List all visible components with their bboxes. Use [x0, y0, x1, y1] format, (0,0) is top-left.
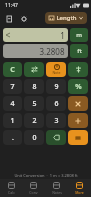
button[interactable]: Measure: [68, 62, 88, 77]
button[interactable]: History: [4, 13, 15, 24]
staticText: 11:47: [5, 2, 18, 9]
staticText: 2: [32, 116, 37, 126]
staticText: ft: [77, 47, 82, 55]
staticText: 1: [60, 30, 65, 41]
button[interactable]: Note: [46, 62, 66, 77]
staticText: 1: [10, 116, 15, 126]
staticText: 8: [32, 82, 37, 92]
staticText: 0: [32, 133, 37, 143]
staticText: m: [76, 31, 82, 39]
staticText: 5: [32, 99, 37, 109]
button[interactable]: Calc: [0, 179, 22, 197]
staticText: %: [75, 82, 82, 92]
button[interactable]: Swap units: [24, 62, 44, 77]
button[interactable]: Settings: [18, 13, 29, 24]
staticText: .: [12, 133, 14, 143]
button[interactable]: 4: [3, 96, 22, 111]
button[interactable]: 8: [24, 79, 44, 94]
staticText: 9: [54, 82, 59, 92]
button[interactable]: 1: [3, 28, 68, 42]
button[interactable]: C: [3, 62, 22, 77]
button[interactable]: More: [68, 179, 91, 197]
button[interactable]: Length: [45, 12, 87, 24]
button[interactable]: 2: [24, 113, 44, 128]
staticText: Length: [56, 14, 77, 22]
button[interactable]: Multiply: [68, 96, 88, 111]
button[interactable]: Backspace: [46, 130, 66, 145]
button[interactable]: Equals: [68, 130, 88, 145]
button[interactable]: m: [70, 28, 88, 42]
staticText: More: [75, 190, 84, 195]
staticText: C: [10, 65, 15, 75]
button[interactable]: 7: [3, 79, 22, 94]
button[interactable]: 0: [24, 130, 44, 145]
button[interactable]: 6: [46, 96, 66, 111]
staticText: Unit Conversion · 1 m = 3.2808 ft: [14, 173, 78, 178]
button[interactable]: .: [3, 130, 22, 145]
staticText: 6: [54, 99, 59, 109]
staticText: Note: [52, 70, 61, 75]
staticText: Notes: [52, 190, 62, 195]
button[interactable]: ft: [70, 44, 88, 58]
button[interactable]: 3: [46, 113, 66, 128]
staticText: 3.2808: [39, 46, 65, 57]
button[interactable]: 3.2808: [3, 44, 68, 58]
staticText: Conv: [29, 190, 38, 195]
staticText: Calc: [8, 190, 15, 195]
button[interactable]: Conv: [22, 179, 45, 197]
button[interactable]: 9: [46, 79, 66, 94]
button[interactable]: Add: [68, 113, 88, 128]
button[interactable]: %: [68, 79, 88, 94]
staticText: 7: [10, 82, 15, 92]
staticText: 3: [54, 116, 59, 126]
button[interactable]: Notes: [45, 179, 68, 197]
staticText: 4: [10, 99, 15, 109]
button[interactable]: 1: [3, 113, 22, 128]
button[interactable]: 5: [24, 96, 44, 111]
